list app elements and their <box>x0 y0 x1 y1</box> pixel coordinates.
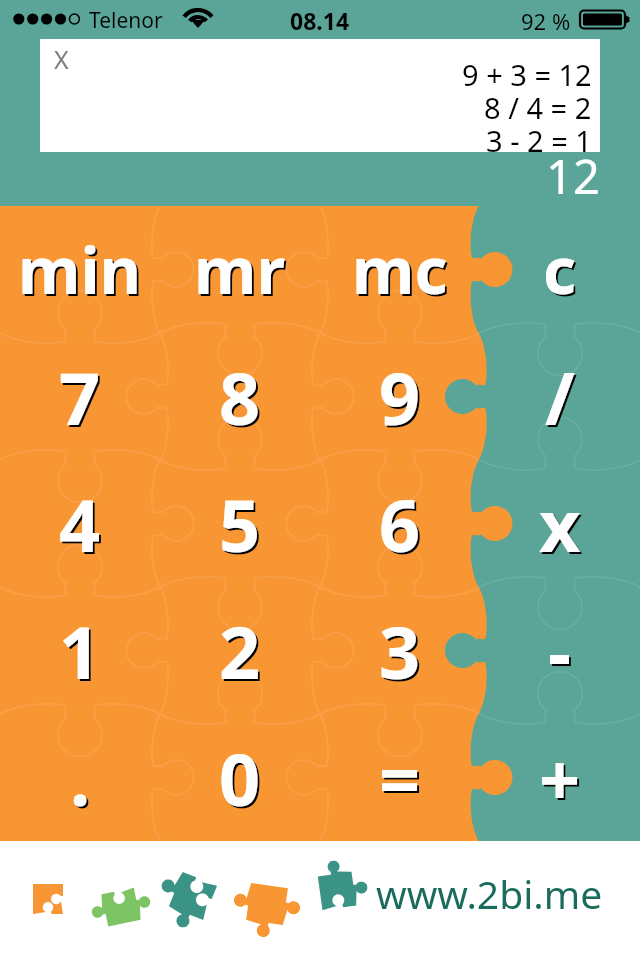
button[interactable]: 1 <box>0 587 160 714</box>
button[interactable]: 6 <box>320 460 480 587</box>
button[interactable]: = <box>320 714 480 841</box>
staticText: 9 + 3 = 12 <box>462 55 592 94</box>
button[interactable]: 4 <box>0 460 160 587</box>
staticText: 1 <box>59 602 101 700</box>
staticText: / <box>547 350 577 448</box>
button[interactable]: / <box>480 333 640 460</box>
button[interactable]: 2 <box>160 587 320 714</box>
staticText: + <box>541 731 583 829</box>
staticText: . <box>70 729 91 827</box>
staticText: mr <box>194 226 286 313</box>
staticText: 2 <box>221 604 263 702</box>
staticText: c <box>543 226 577 313</box>
button[interactable]: 9 <box>320 333 480 460</box>
staticText: 3 - 2 = 1 <box>486 121 592 160</box>
button[interactable]: c <box>480 206 640 333</box>
button[interactable]: + <box>480 714 640 841</box>
staticText: 6 <box>381 477 423 575</box>
staticText: 08.14 <box>290 5 350 36</box>
staticText: + <box>539 729 581 827</box>
button[interactable]: X <box>54 42 69 76</box>
staticText: 8 <box>221 350 263 448</box>
button[interactable]: 0 <box>160 714 320 841</box>
staticText: c <box>545 228 579 315</box>
staticText: = <box>381 731 423 829</box>
button[interactable]: x <box>480 460 640 587</box>
staticText: 5 <box>219 475 261 573</box>
staticText: 9 <box>379 348 421 446</box>
button[interactable]: mc <box>320 206 480 333</box>
staticText: 9 <box>381 350 423 448</box>
staticText: / <box>545 348 575 446</box>
staticText: mr <box>196 228 288 315</box>
staticText: 12 <box>546 144 600 208</box>
staticText: x <box>541 477 583 575</box>
staticText: 7 <box>61 350 103 448</box>
staticText: 1 <box>61 604 103 702</box>
staticText: 4 <box>59 475 101 573</box>
button[interactable]: . <box>0 714 160 841</box>
button[interactable]: min <box>0 206 160 333</box>
staticText: 3 <box>379 602 421 700</box>
staticText: x <box>539 475 581 573</box>
staticText: 0 <box>221 731 263 829</box>
staticText: 92 % <box>521 6 571 36</box>
staticText: 8 <box>219 348 261 446</box>
staticText: mc <box>352 226 448 313</box>
staticText: = <box>379 729 421 827</box>
staticText: min <box>18 226 142 313</box>
button[interactable]: 8 <box>160 333 320 460</box>
staticText: - <box>548 602 572 700</box>
staticText: min <box>20 228 144 315</box>
staticText: 8 / 4 = 2 <box>484 88 592 127</box>
staticText: Telenor <box>89 6 163 35</box>
staticText: 0 <box>219 729 261 827</box>
button[interactable]: 5 <box>160 460 320 587</box>
button[interactable]: 7 <box>0 333 160 460</box>
button[interactable]: www.2bi.me <box>0 841 640 960</box>
button[interactable]: - <box>480 587 640 714</box>
staticText: 7 <box>59 348 101 446</box>
staticText: 5 <box>221 477 263 575</box>
staticText: . <box>72 731 93 829</box>
staticText: 2 <box>219 602 261 700</box>
staticText: - <box>550 604 574 702</box>
button[interactable]: mr <box>160 206 320 333</box>
staticText: mc <box>354 228 450 315</box>
staticText: 3 <box>381 604 423 702</box>
button[interactable]: 3 <box>320 587 480 714</box>
staticText: www.2bi.me <box>376 867 603 920</box>
staticText: 4 <box>61 477 103 575</box>
staticText: 6 <box>379 475 421 573</box>
